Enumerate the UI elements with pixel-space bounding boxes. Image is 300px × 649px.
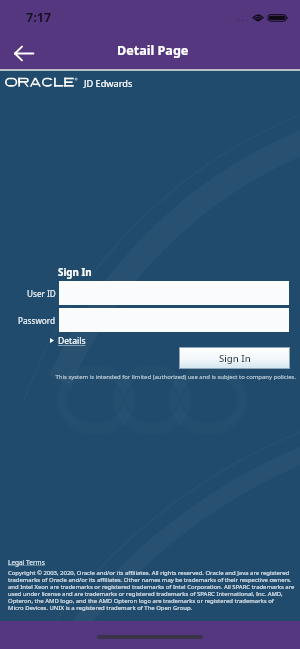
- staticText: Sign In: [58, 266, 92, 279]
- staticText: User ID: [27, 288, 56, 299]
- staticText: Details: [58, 335, 86, 346]
- staticText: Copyright © 2003, 2020, Oracle and/or it…: [8, 569, 290, 576]
- staticText: JD Edwards: [84, 77, 133, 90]
- staticText: and Intel Xeon are trademarks or registe…: [8, 583, 295, 590]
- staticText: This system is intended for limited (aut…: [0, 373, 296, 381]
- button[interactable]: Sign In: [179, 347, 290, 369]
- staticText: Sign In: [219, 352, 251, 365]
- staticText: Detail Page: [117, 42, 189, 59]
- staticText: 7:17: [26, 9, 52, 26]
- staticText: Opteron, the AMD logo, and the AMD Opter…: [8, 597, 299, 604]
- button[interactable]: Back: [4, 37, 44, 69]
- button[interactable]: Legal Terms: [8, 558, 45, 567]
- button[interactable]: Details: [50, 335, 86, 346]
- staticText: trademarks of Oracle and/or its affiliat…: [8, 576, 299, 583]
- staticText: Micro Devices. UNIX is a registered trad…: [8, 604, 193, 611]
- staticText: Password: [18, 315, 56, 326]
- staticText: used under license and are trademarks or…: [8, 590, 283, 597]
